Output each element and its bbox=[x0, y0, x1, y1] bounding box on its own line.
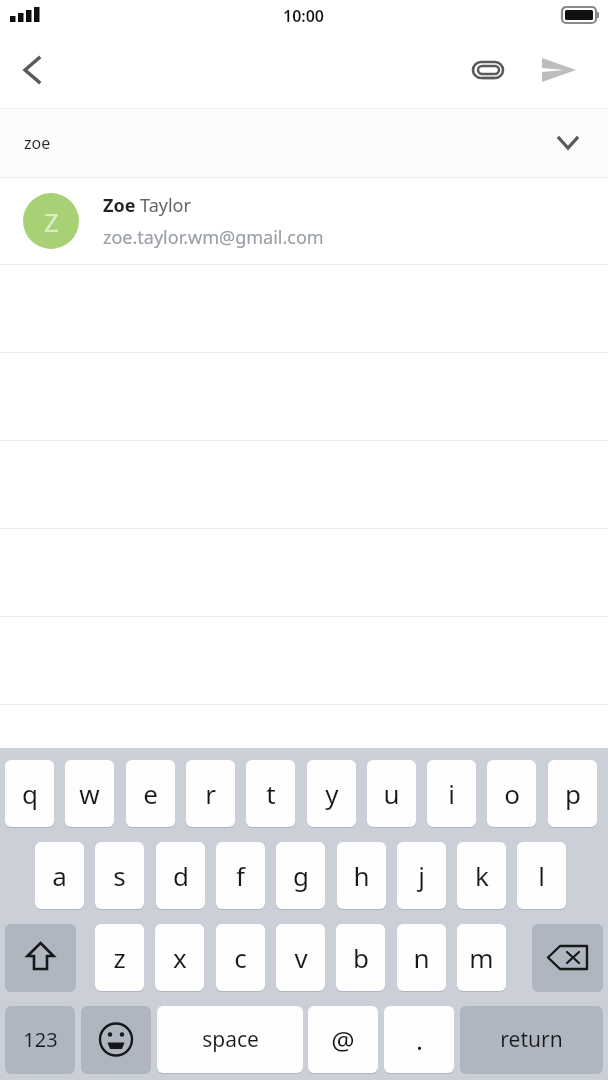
button[interactable]: Shift bbox=[5, 924, 76, 991]
staticText: x bbox=[173, 940, 187, 975]
button[interactable]: r bbox=[186, 760, 235, 827]
staticText: g bbox=[293, 858, 309, 893]
staticText: o bbox=[504, 776, 520, 811]
button[interactable]: o bbox=[487, 760, 536, 827]
button[interactable]: l bbox=[517, 842, 566, 909]
button[interactable]: Expand recipients bbox=[540, 117, 592, 169]
staticText: @ bbox=[331, 1022, 355, 1057]
button[interactable]: Emoji bbox=[81, 1006, 151, 1073]
button[interactable]: a bbox=[35, 842, 84, 909]
staticText: w bbox=[79, 776, 100, 811]
button[interactable]: v bbox=[276, 924, 325, 991]
staticText: e bbox=[143, 776, 158, 811]
button[interactable]: b bbox=[336, 924, 385, 991]
button[interactable]: z bbox=[95, 924, 144, 991]
staticText: return bbox=[500, 1025, 563, 1054]
button[interactable]: f bbox=[216, 842, 265, 909]
button[interactable]: @ bbox=[308, 1006, 378, 1073]
staticText: 10:00 bbox=[283, 5, 325, 27]
staticText: z bbox=[113, 940, 126, 975]
staticText: v bbox=[294, 940, 308, 975]
staticText: c bbox=[234, 940, 247, 975]
button[interactable]: s bbox=[95, 842, 144, 909]
button[interactable]: x bbox=[155, 924, 204, 991]
staticText: zoe bbox=[24, 132, 51, 154]
staticText: f bbox=[236, 858, 245, 893]
staticText: k bbox=[475, 858, 489, 893]
staticText: zoe.taylor.wm@gmail.com bbox=[103, 225, 324, 250]
staticText: r bbox=[205, 776, 216, 811]
button[interactable]: Attach file bbox=[462, 44, 514, 96]
staticText: b bbox=[353, 940, 369, 975]
staticText: t bbox=[266, 776, 276, 811]
button[interactable]: j bbox=[397, 842, 446, 909]
staticText: 123 bbox=[23, 1026, 58, 1053]
button[interactable]: d bbox=[156, 842, 205, 909]
button[interactable]: i bbox=[427, 760, 476, 827]
button[interactable]: Send bbox=[532, 44, 588, 96]
button[interactable]: 123 bbox=[5, 1006, 75, 1073]
button[interactable]: g bbox=[276, 842, 325, 909]
staticText: . bbox=[416, 1022, 423, 1057]
button[interactable]: q bbox=[5, 760, 54, 827]
button[interactable]: y bbox=[307, 760, 356, 827]
staticText: n bbox=[413, 940, 430, 975]
staticText: q bbox=[22, 776, 38, 811]
button[interactable]: Back bbox=[6, 44, 58, 96]
button[interactable]: c bbox=[216, 924, 265, 991]
button[interactable]: Backspace bbox=[532, 924, 603, 991]
button[interactable]: u bbox=[367, 760, 416, 827]
staticText: h bbox=[353, 858, 370, 893]
staticText: m bbox=[469, 940, 494, 975]
staticText: a bbox=[52, 858, 67, 893]
staticText: i bbox=[448, 776, 455, 811]
button[interactable]: t bbox=[246, 760, 295, 827]
button[interactable]: p bbox=[548, 760, 597, 827]
staticText: l bbox=[538, 858, 545, 893]
button[interactable]: h bbox=[337, 842, 386, 909]
staticText: Zoe Taylor bbox=[103, 193, 191, 218]
button[interactable]: k bbox=[457, 842, 506, 909]
button[interactable]: space bbox=[157, 1006, 303, 1073]
button[interactable]: Z bbox=[0, 178, 608, 264]
button[interactable]: m bbox=[457, 924, 506, 991]
button[interactable]: zoe bbox=[0, 109, 608, 177]
staticText: Z bbox=[44, 204, 59, 239]
staticText: d bbox=[173, 858, 189, 893]
staticText: space bbox=[202, 1025, 259, 1054]
staticText: s bbox=[113, 858, 126, 893]
button[interactable]: return bbox=[460, 1006, 603, 1073]
button[interactable]: w bbox=[65, 760, 114, 827]
staticText: u bbox=[383, 776, 400, 811]
button[interactable]: e bbox=[126, 760, 175, 827]
button[interactable]: n bbox=[397, 924, 446, 991]
staticText: y bbox=[325, 776, 339, 811]
staticText: p bbox=[565, 776, 581, 811]
staticText: j bbox=[418, 858, 425, 893]
button[interactable]: . bbox=[384, 1006, 454, 1073]
